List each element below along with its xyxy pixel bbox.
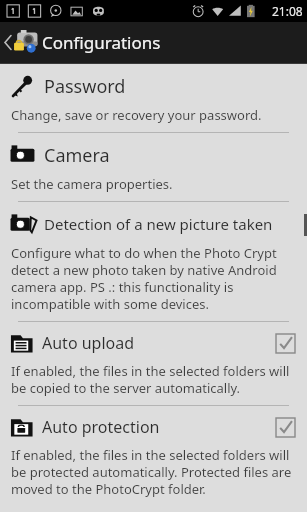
button[interactable]: Auto upload toggle — [273, 331, 297, 355]
staticText: If enabled, the files in the selected fo… — [11, 446, 293, 498]
staticText: Auto upload — [42, 332, 135, 354]
staticText: Configure what to do when the Photo Cryp… — [11, 244, 293, 313]
staticText: Configurations — [42, 31, 161, 54]
staticText: Change, save or recovery your password. — [11, 106, 262, 124]
staticText: Detection of a new picture taken — [44, 214, 273, 234]
button[interactable]: Auto upload — [0, 322, 307, 405]
button[interactable]: Navigate up — [0, 22, 42, 63]
staticText: Password — [44, 74, 126, 99]
staticText: Set the camera properties. — [11, 175, 173, 193]
button[interactable]: Camera — [0, 133, 307, 201]
staticText: If enabled, the files in the selected fo… — [11, 362, 293, 397]
staticText: Camera — [44, 143, 110, 168]
button[interactable]: Auto protection toggle — [273, 415, 297, 439]
button[interactable]: Auto protection — [0, 406, 307, 506]
button[interactable]: Detection of a new picture taken — [0, 202, 307, 321]
staticText: 21:08 — [272, 3, 303, 19]
button[interactable]: Password — [0, 64, 307, 132]
staticText: Auto protection — [42, 416, 160, 438]
